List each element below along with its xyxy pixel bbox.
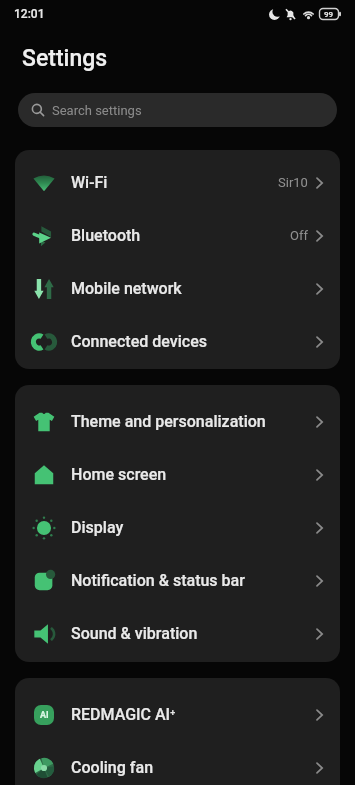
staticText: AI [40, 710, 49, 721]
staticText: Wi-Fi [71, 173, 108, 192]
staticText: Notification & status bar [71, 571, 245, 590]
button[interactable]: AI [15, 688, 340, 741]
button[interactable]: Bluetooth [15, 209, 340, 262]
staticText: Sir10 [278, 175, 308, 190]
button[interactable]: Search settings [18, 93, 337, 127]
staticText: Sound & vibration [71, 624, 198, 643]
button[interactable]: Connected devices [15, 315, 340, 368]
staticText: Home screen [71, 465, 167, 484]
button[interactable]: Theme and personalization [15, 395, 340, 448]
staticText: 99 [324, 10, 334, 19]
staticText: REDMAGIC AI+ [71, 705, 176, 724]
staticText: Off [290, 228, 308, 243]
button[interactable]: Home screen [15, 448, 340, 501]
button[interactable]: Mobile network [15, 262, 340, 315]
button[interactable]: Notification & status bar [15, 554, 340, 607]
staticText: Settings [22, 45, 108, 72]
staticText: 12:01 [14, 7, 45, 21]
staticText: Cooling fan [71, 758, 154, 777]
staticText: Mobile network [71, 279, 182, 298]
staticText: Bluetooth [71, 226, 141, 245]
staticText: Connected devices [71, 332, 208, 351]
button[interactable]: Wi-Fi [15, 156, 340, 209]
button[interactable]: Sound & vibration [15, 607, 340, 660]
staticText: Search settings [52, 103, 142, 118]
staticText: Theme and personalization [71, 412, 266, 431]
staticText: Display [71, 518, 124, 537]
button[interactable]: Cooling fan [15, 741, 340, 785]
button[interactable]: Display [15, 501, 340, 554]
